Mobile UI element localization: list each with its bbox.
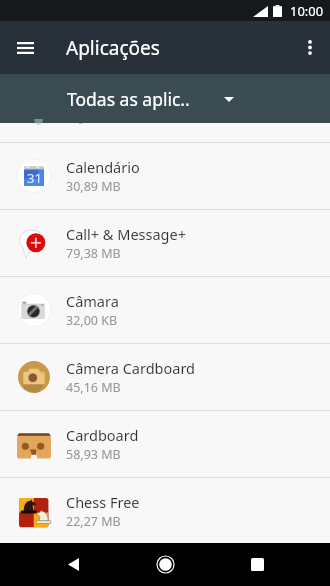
button[interactable]: 31	[0, 143, 330, 209]
button[interactable]: Recents	[234, 543, 280, 586]
staticText: Câmara	[66, 291, 119, 311]
staticText: Calendário	[66, 157, 140, 177]
staticText: 79,38 MB	[66, 245, 121, 262]
staticText: Todas as aplic..	[67, 87, 190, 111]
button[interactable]: More options	[290, 21, 330, 74]
button[interactable]: Câmera Cardboard	[0, 344, 330, 410]
staticText: Call+ & Message+	[66, 224, 186, 244]
button[interactable]: Menu	[0, 21, 50, 74]
staticText: 10:00	[290, 2, 324, 20]
staticText: Cardboard	[66, 425, 139, 445]
staticText: 45,16 MB	[66, 379, 121, 396]
staticText: Chess Free	[66, 492, 140, 512]
staticText: 31	[27, 169, 42, 187]
staticText: 22,27 MB	[66, 513, 121, 530]
button[interactable]: Chess Free	[0, 478, 330, 543]
button[interactable]: Cardboard	[0, 411, 330, 477]
staticText: 32,00 KB	[66, 312, 118, 329]
button[interactable]: Home	[142, 543, 188, 586]
staticText: 30,89 MB	[66, 178, 121, 195]
button[interactable]: Câmara	[0, 277, 330, 343]
button[interactable]: Call+ & Message+	[0, 210, 330, 276]
staticText: Aplicações	[66, 35, 160, 61]
staticText: 58,93 MB	[66, 446, 121, 463]
staticText: Câmera Cardboard	[66, 358, 195, 378]
button[interactable]: Todas as aplic..	[56, 87, 234, 111]
button[interactable]: Back	[50, 543, 96, 586]
